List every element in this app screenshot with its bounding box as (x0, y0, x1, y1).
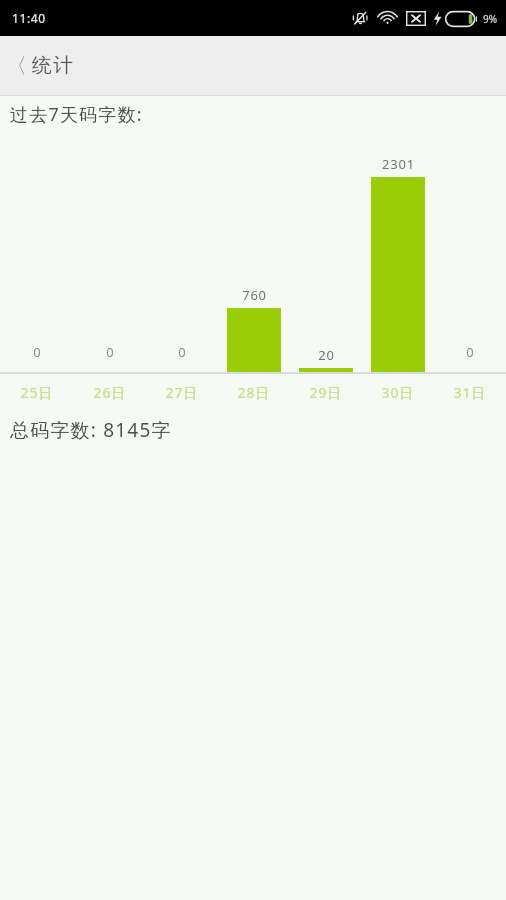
staticText: 总码字数: 8145字 (10, 417, 172, 443)
staticText: 0 (106, 343, 114, 361)
staticText: 31日 (453, 383, 487, 402)
staticText: 25日 (20, 383, 54, 402)
staticText: 30日 (381, 383, 415, 402)
button[interactable]: 20 (290, 132, 362, 372)
button[interactable]: 760 (218, 132, 290, 372)
staticText: 〈 (6, 53, 27, 79)
button[interactable]: 0 (146, 132, 218, 372)
button[interactable]: 0 (434, 132, 506, 372)
button[interactable]: 0 (0, 132, 73, 372)
staticText: 29日 (309, 383, 343, 402)
button[interactable]: 0 (73, 132, 146, 372)
staticText: 27日 (165, 383, 199, 402)
button[interactable]: 27日 (146, 374, 218, 410)
button[interactable]: 2301 (362, 132, 434, 372)
staticText: 2301 (382, 155, 415, 173)
staticText: 统计 (31, 53, 74, 78)
button[interactable]: 28日 (218, 374, 290, 410)
button[interactable]: 29日 (290, 374, 362, 410)
button[interactable]: 31日 (434, 374, 506, 410)
button[interactable]: 25日 (0, 374, 73, 410)
button[interactable]: Back (0, 36, 506, 95)
staticText: 20 (318, 346, 335, 364)
button[interactable]: 30日 (362, 374, 434, 410)
staticText: 760 (242, 286, 267, 304)
button[interactable]: 26日 (73, 374, 146, 410)
staticText: 0 (33, 343, 41, 361)
staticText: 26日 (93, 383, 127, 402)
staticText: 0 (178, 343, 186, 361)
staticText: 28日 (237, 383, 271, 402)
staticText: 9% (483, 12, 498, 26)
staticText: 0 (466, 343, 474, 361)
staticText: 11:40 (12, 10, 46, 26)
staticText: 过去7天码字数: (10, 102, 143, 127)
